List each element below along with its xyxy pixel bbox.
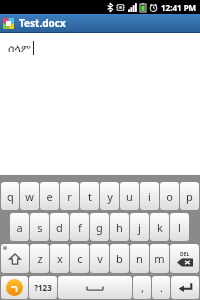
button[interactable]: Shift bbox=[1, 244, 29, 273]
staticText: , bbox=[141, 280, 144, 295]
staticText: y bbox=[107, 189, 113, 204]
button[interactable]: Change language bbox=[1, 276, 28, 299]
button[interactable]: h bbox=[110, 213, 129, 241]
staticText: l bbox=[178, 220, 181, 235]
staticText: ግ bbox=[11, 282, 18, 294]
button[interactable]: g bbox=[90, 213, 109, 241]
button[interactable]: v bbox=[90, 244, 109, 273]
button[interactable]: . bbox=[152, 276, 170, 299]
button[interactable]: r bbox=[60, 182, 79, 210]
staticText: m bbox=[154, 251, 165, 266]
staticText: b bbox=[116, 251, 123, 266]
button[interactable]: Enter bbox=[171, 276, 199, 299]
staticText: n bbox=[136, 251, 143, 266]
staticText: u bbox=[126, 189, 133, 204]
staticText: Test.docx bbox=[19, 16, 66, 30]
staticText: a bbox=[16, 220, 23, 235]
staticText: g bbox=[96, 220, 103, 235]
staticText: x bbox=[57, 251, 63, 266]
staticText: DEL bbox=[180, 251, 190, 258]
button[interactable]: p bbox=[180, 182, 199, 210]
button[interactable]: f bbox=[70, 213, 89, 241]
button[interactable]: ?123 bbox=[29, 276, 57, 299]
button[interactable]: q bbox=[1, 182, 19, 210]
staticText: ሰላም bbox=[8, 43, 32, 54]
staticText: h bbox=[116, 220, 123, 235]
staticText: v bbox=[97, 251, 103, 266]
staticText: s bbox=[37, 220, 43, 235]
button[interactable]: ሰላም bbox=[0, 33, 200, 175]
button[interactable]: s bbox=[30, 213, 49, 241]
staticText: c bbox=[77, 251, 83, 266]
staticText: e bbox=[46, 189, 53, 204]
staticText: q bbox=[7, 189, 14, 204]
button[interactable]: Delete bbox=[170, 244, 199, 273]
staticText: w bbox=[25, 189, 34, 204]
staticText: . bbox=[160, 280, 163, 295]
staticText: p bbox=[186, 189, 193, 204]
button[interactable]: l bbox=[170, 213, 189, 241]
button[interactable]: m bbox=[150, 244, 169, 273]
button[interactable]: i bbox=[140, 182, 159, 210]
button[interactable]: , bbox=[133, 276, 151, 299]
staticText: f bbox=[78, 220, 82, 235]
button[interactable]: j bbox=[130, 213, 149, 241]
button[interactable]: y bbox=[100, 182, 119, 210]
staticText: d bbox=[56, 220, 63, 235]
button[interactable]: b bbox=[110, 244, 129, 273]
staticText: ?123 bbox=[34, 282, 52, 293]
button[interactable]: k bbox=[150, 213, 169, 241]
button[interactable]: w bbox=[20, 182, 39, 210]
staticText: 12:41 PM bbox=[161, 2, 197, 13]
staticText: o bbox=[166, 189, 173, 204]
button[interactable]: o bbox=[160, 182, 179, 210]
button[interactable]: c bbox=[70, 244, 89, 273]
staticText: t bbox=[88, 189, 92, 204]
button[interactable]: e bbox=[40, 182, 59, 210]
staticText: r bbox=[67, 189, 72, 204]
button[interactable]: t bbox=[80, 182, 99, 210]
button[interactable]: n bbox=[130, 244, 149, 273]
staticText: i bbox=[148, 189, 151, 204]
staticText: z bbox=[37, 251, 43, 266]
button[interactable]: a bbox=[10, 213, 29, 241]
staticText: j bbox=[138, 220, 141, 235]
button[interactable]: u bbox=[120, 182, 139, 210]
button[interactable]: Space bbox=[58, 276, 132, 299]
button[interactable]: z bbox=[30, 244, 49, 273]
button[interactable]: d bbox=[50, 213, 69, 241]
staticText: k bbox=[157, 220, 163, 235]
button[interactable]: x bbox=[50, 244, 69, 273]
